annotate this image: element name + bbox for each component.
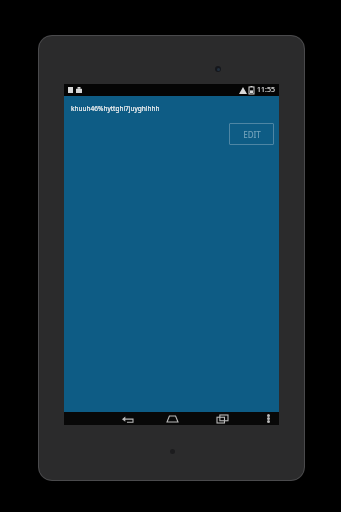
button[interactable]: Recent apps xyxy=(211,412,233,425)
button[interactable]: Back xyxy=(116,412,138,425)
button[interactable]: EDIT xyxy=(229,123,274,145)
button[interactable]: More options xyxy=(261,412,275,425)
staticText: khuuh46%hyttghi7juyghlhhh xyxy=(71,104,160,113)
staticText: EDIT xyxy=(243,129,261,140)
button[interactable]: Home xyxy=(161,412,183,425)
staticText: 11:55 xyxy=(257,85,275,95)
